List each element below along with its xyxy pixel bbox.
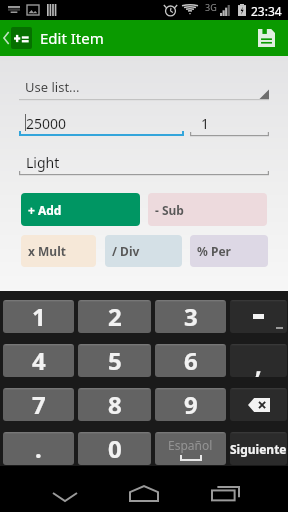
staticText: 1 (32, 300, 46, 333)
button[interactable]: , (230, 344, 287, 377)
button[interactable]: 0 (78, 432, 151, 465)
staticText: Siguiente (230, 441, 287, 457)
button[interactable]: Home (120, 466, 168, 512)
staticText: % Per (197, 243, 231, 259)
button[interactable]: / Div (105, 235, 182, 267)
staticText: 3 (184, 300, 198, 333)
staticText: 5 (108, 344, 122, 377)
staticText: 1 (201, 114, 210, 133)
button[interactable]: 5 (78, 344, 151, 377)
staticText: 25000 (26, 114, 67, 133)
button[interactable]: Save (244, 20, 288, 56)
button[interactable]: + Add (21, 193, 140, 226)
staticText: 4 (32, 344, 46, 377)
button[interactable]: . (3, 432, 74, 465)
staticText: , (255, 348, 262, 377)
button[interactable] (230, 300, 287, 333)
button[interactable]: 7 (3, 388, 74, 421)
button[interactable]: 1 (190, 112, 269, 138)
button[interactable]: 8 (78, 388, 151, 421)
staticText: - Sub (155, 202, 184, 218)
staticText: Use list... (25, 78, 80, 96)
staticText: / Div (112, 243, 140, 259)
button[interactable]: Back (41, 466, 89, 512)
button[interactable]: 9 (155, 388, 226, 421)
staticText: 2 (108, 300, 122, 333)
staticText: . (35, 432, 42, 465)
staticText: 3G (205, 1, 217, 13)
staticText: 7 (32, 388, 46, 421)
button[interactable]: 25000 (19, 112, 184, 138)
button[interactable]: Navigate up (0, 20, 36, 56)
staticText: 6 (184, 344, 198, 377)
button[interactable]: 3 (155, 300, 226, 333)
staticText: 8 (108, 388, 122, 421)
button[interactable]: - Sub (148, 193, 267, 226)
staticText: 23:34 (251, 3, 282, 19)
staticText: 0 (108, 432, 122, 465)
staticText: Light (26, 153, 60, 172)
button[interactable]: 1 (3, 300, 74, 333)
button[interactable]: x Mult (21, 235, 96, 267)
button[interactable]: 2 (78, 300, 151, 333)
staticText: 9 (184, 388, 198, 421)
button[interactable]: Light (19, 151, 269, 177)
button[interactable]: Español (155, 432, 226, 465)
button[interactable]: Use list... (19, 78, 269, 104)
button[interactable]: 6 (155, 344, 226, 377)
staticText: Edit Item (40, 28, 104, 48)
button[interactable] (230, 388, 287, 421)
button[interactable]: Recent apps (201, 466, 249, 512)
staticText: + Add (28, 202, 62, 218)
button[interactable]: Siguiente (230, 432, 287, 465)
staticText: Español (168, 437, 213, 453)
button[interactable]: 4 (3, 344, 74, 377)
staticText: x Mult (28, 243, 66, 259)
button[interactable]: % Per (190, 235, 268, 267)
